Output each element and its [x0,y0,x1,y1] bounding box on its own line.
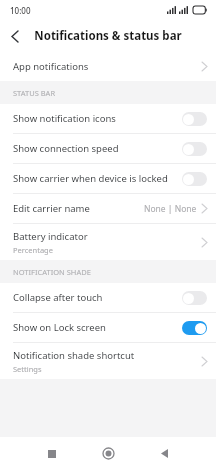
button[interactable]: Show on Lock screen [0,313,216,342]
button[interactable]: Show carrier when device is locked [0,164,216,193]
staticText: Percentage [13,245,53,255]
staticText: None | None [144,203,197,215]
staticText: Show on Lock screen [13,321,182,334]
button[interactable]: Battery indicator [0,224,216,260]
button[interactable]: Show notification icons [0,104,216,133]
staticText: Notification shade shortcut [13,349,135,362]
button[interactable]: Back [147,437,181,470]
staticText: App notifications [13,60,89,73]
button[interactable]: Home [91,437,125,470]
button[interactable]: Back [0,21,30,51]
button[interactable]: Show connection speed [0,134,216,163]
staticText: Collapse after touch [13,291,182,304]
staticText: Battery indicator [13,230,88,243]
button[interactable]: App notifications [0,52,216,81]
staticText: Edit carrier name [13,202,90,215]
staticText: Settings [13,364,42,374]
staticText: Show notification icons [13,112,182,125]
staticText: Notifications & status bar [34,28,182,44]
button[interactable]: Collapse after touch [0,283,216,312]
staticText: NOTIFICATION SHADE [13,267,91,277]
staticText: STATUS BAR [13,88,56,98]
staticText: Show connection speed [13,142,182,155]
staticText: Show carrier when device is locked [13,172,182,185]
staticText: 10:00 [10,5,31,16]
button[interactable]: Notification shade shortcut [0,343,216,379]
button[interactable]: Edit carrier name [0,194,216,223]
button[interactable]: Recents [35,437,69,470]
